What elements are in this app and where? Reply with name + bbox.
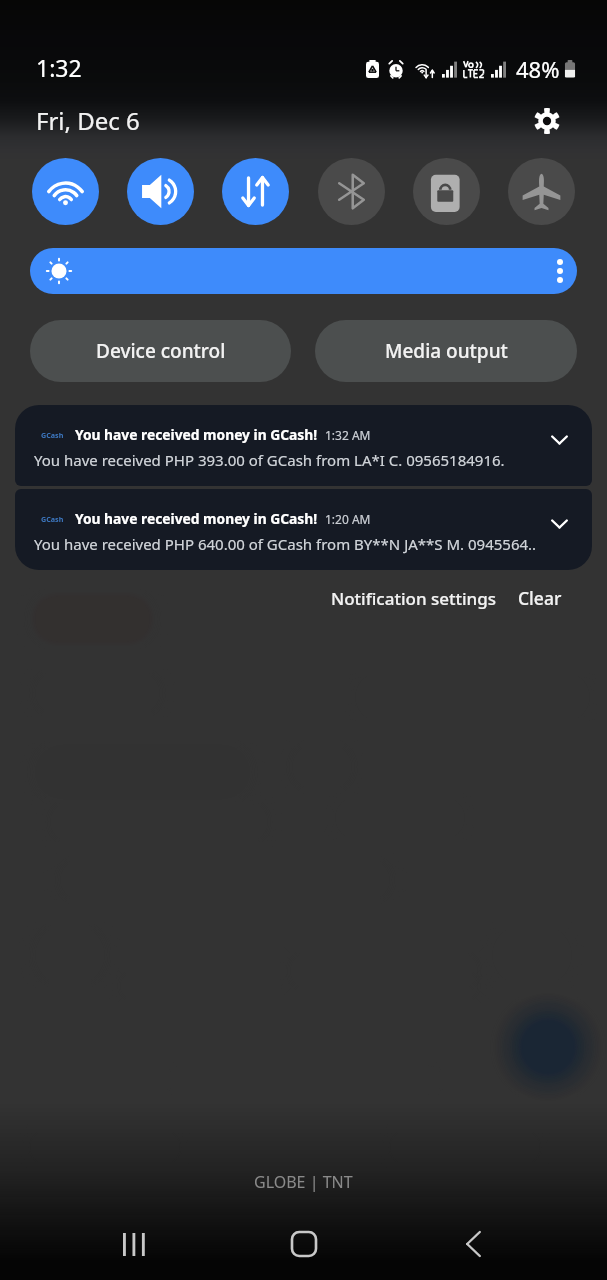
staticText: 1:20 AM [325,511,371,527]
staticText: 48% [516,54,560,84]
staticText: You have received money in GCash! [75,509,318,528]
staticText: GLOBE | TNT [254,1171,353,1193]
button[interactable]: Airplane mode [508,158,575,225]
button[interactable]: Lock [413,158,480,225]
staticText: Media output [385,338,508,364]
staticText: 1:32 AM [325,427,371,443]
staticText: Clear [518,586,562,610]
button[interactable]: GCash [15,405,592,486]
button[interactable]: Expand [543,424,575,456]
button[interactable]: Mobile data [222,158,289,225]
button[interactable]: Clear [514,580,566,616]
staticText: GCash [41,514,64,524]
button[interactable]: Brightness [30,248,577,294]
button[interactable]: GCash [15,489,592,570]
button[interactable]: Media output [315,320,577,382]
button[interactable]: Sound [127,158,194,225]
staticText: Device control [96,338,226,364]
button[interactable]: Bluetooth [318,158,385,225]
button[interactable]: Device control [30,320,291,382]
staticText: You have received PHP 640.00 of GCash fr… [34,534,537,554]
staticText: Notification settings [331,587,497,610]
button[interactable]: Notification settings [327,581,501,616]
staticText: You have received PHP 393.00 of GCash fr… [34,450,505,470]
staticText: You have received money in GCash! [75,425,318,444]
button[interactable]: Recent apps [99,1209,169,1279]
button[interactable]: Wi-Fi [32,158,99,225]
staticText: 1:32 [36,52,82,83]
button[interactable]: Expand [543,508,575,540]
button[interactable]: Settings [529,103,565,139]
staticText: GCash [41,430,64,440]
staticText: Fri, Dec 6 [36,104,140,137]
button[interactable]: Back [438,1209,508,1279]
button[interactable]: Home [269,1209,339,1279]
